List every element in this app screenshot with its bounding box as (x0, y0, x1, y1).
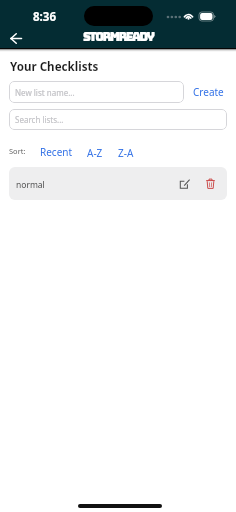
staticText: 8:36 (33, 9, 56, 25)
button[interactable]: Recent (38, 144, 75, 160)
button[interactable]: Search lists... (9, 109, 227, 130)
staticText: A-Z (87, 146, 103, 160)
button[interactable]: Create (190, 83, 227, 101)
staticText: StormReady (83, 29, 154, 45)
staticText: Sort: (9, 146, 26, 156)
staticText: Search lists... (15, 114, 64, 125)
staticText: Your Checklists (10, 59, 99, 75)
staticText: New list name... (15, 87, 75, 98)
button[interactable]: A-Z (85, 145, 105, 161)
button[interactable]: Back (5, 27, 27, 49)
button[interactable]: Delete list (202, 175, 218, 191)
button[interactable]: Z-A (116, 145, 136, 161)
staticText: Create (193, 85, 224, 99)
staticText: Z-A (118, 146, 134, 160)
button[interactable]: New list name... (9, 81, 184, 103)
staticText: Recent (40, 145, 73, 159)
staticText: normal (16, 179, 45, 191)
button[interactable]: normal (9, 167, 227, 200)
button[interactable]: Edit list (176, 175, 192, 191)
